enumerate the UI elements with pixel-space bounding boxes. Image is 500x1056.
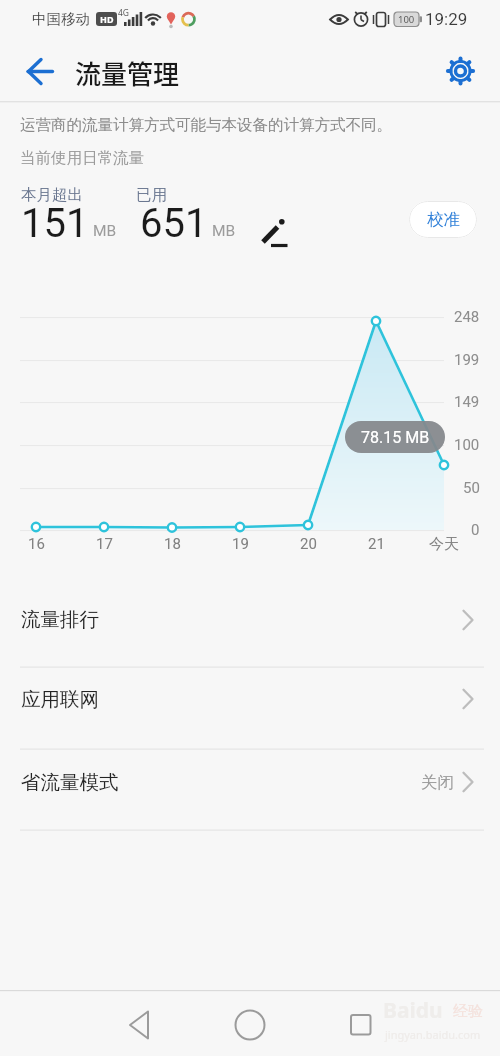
staticText: 流量管理 [75, 54, 180, 92]
staticText: Baidu [383, 996, 443, 1025]
staticText: 今天 [429, 535, 459, 554]
staticText: 149 [454, 393, 480, 411]
staticText: MB [93, 222, 117, 240]
staticText: 20 [300, 535, 317, 553]
staticText: 4G [118, 7, 130, 19]
button[interactable] [254, 212, 294, 252]
staticText: MB [212, 222, 236, 240]
staticText: 21 [368, 535, 385, 553]
staticText: 已用 [136, 185, 167, 205]
staticText: 本月超出 [21, 185, 83, 205]
button[interactable]: 校准 [409, 201, 477, 238]
staticText: 17 [96, 535, 113, 553]
staticText: 应用联网 [21, 687, 99, 712]
staticText: 78.15 MB [361, 428, 430, 447]
staticText: 100 [398, 13, 415, 26]
staticText: 运营商的流量计算方式可能与本设备的计算方式不同。 [20, 115, 392, 135]
staticText: HD [100, 13, 114, 25]
button[interactable] [105, 995, 175, 1055]
staticText: 199 [454, 351, 480, 369]
staticText: 经验 [453, 1002, 483, 1021]
button[interactable] [10, 48, 62, 96]
button[interactable] [436, 47, 484, 95]
button[interactable] [325, 995, 395, 1055]
staticText: 19 [232, 535, 249, 553]
button[interactable] [215, 995, 285, 1055]
staticText: 16 [28, 535, 45, 553]
staticText: 关闭 [421, 772, 454, 793]
staticText: 151 [21, 200, 89, 246]
button[interactable]: 流量排行 [0, 578, 500, 661]
staticText: 651 [140, 200, 208, 246]
staticText: 19:29 [425, 9, 468, 29]
staticText: 248 [454, 308, 480, 326]
button[interactable]: 应用联网 [0, 667, 500, 731]
staticText: 100 [454, 436, 480, 454]
staticText: 当前使用日常流量 [20, 148, 144, 168]
staticText: 流量排行 [21, 607, 99, 632]
button[interactable]: 省流量模式 [0, 749, 500, 815]
staticText: 校准 [427, 209, 460, 230]
staticText: jingyan.baidu.com [385, 1027, 481, 1042]
staticText: 0 [471, 521, 480, 539]
staticText: 中国移动 [32, 10, 90, 28]
staticText: 18 [164, 535, 181, 553]
staticText: 50 [463, 479, 480, 497]
staticText: 省流量模式 [21, 770, 119, 795]
